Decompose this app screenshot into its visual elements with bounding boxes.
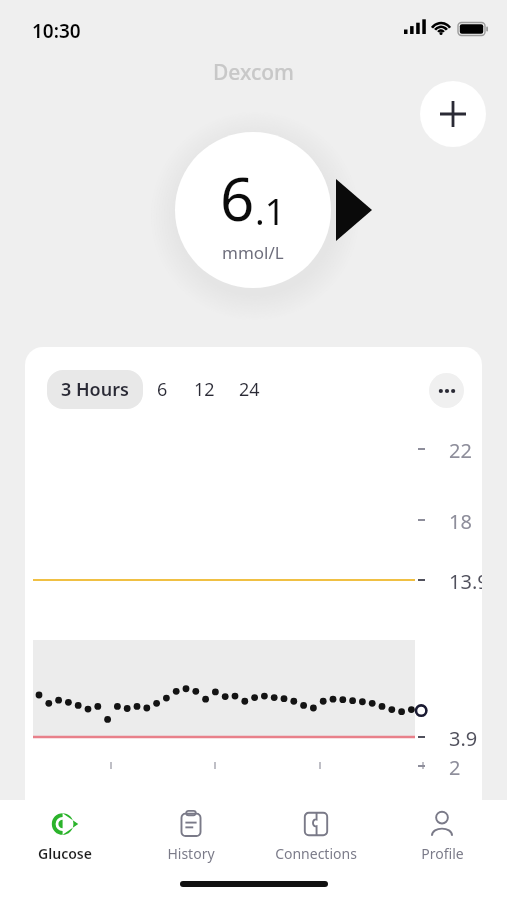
staticText: .1	[255, 187, 286, 236]
staticText: 13.9	[449, 568, 482, 595]
staticText: Dexcom	[213, 58, 294, 87]
staticText: Profile	[421, 844, 464, 863]
button[interactable]: Connections	[256, 800, 376, 863]
staticText: 12	[194, 377, 215, 402]
button[interactable]: 12	[182, 370, 227, 409]
staticText: Glucose	[38, 844, 92, 863]
button[interactable]: Profile	[382, 800, 502, 863]
button[interactable]: Add event	[420, 81, 486, 147]
staticText: 10:30	[32, 18, 81, 44]
staticText: 2	[449, 754, 461, 781]
button[interactable]: 3 Hours	[47, 370, 143, 409]
staticText: 6	[157, 377, 168, 402]
staticText: 3.9	[449, 725, 478, 752]
button[interactable]: 6	[143, 370, 182, 409]
staticText: 24	[239, 377, 260, 402]
button[interactable]: 24	[227, 370, 272, 409]
button[interactable]: More options	[429, 373, 464, 408]
staticText: 3 Hours	[61, 377, 129, 402]
staticText: 18	[449, 508, 472, 535]
staticText: mmol/L	[222, 241, 284, 264]
button[interactable]: History	[131, 800, 251, 863]
staticText: Connections	[275, 844, 357, 863]
button[interactable]: 6	[165, 125, 341, 295]
staticText: 6	[220, 157, 255, 239]
button[interactable]: Glucose	[5, 800, 125, 863]
staticText: 22	[449, 437, 472, 464]
staticText: History	[167, 844, 215, 863]
